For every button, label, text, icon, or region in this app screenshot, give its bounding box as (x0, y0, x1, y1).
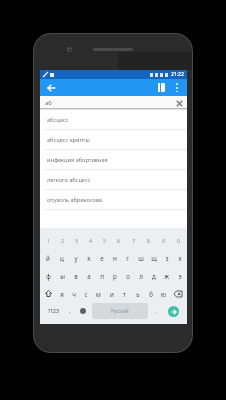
staticText: б (149, 290, 153, 298)
staticText: к (87, 254, 91, 262)
staticText: о (126, 272, 130, 280)
button[interactable]: р (108, 268, 121, 283)
staticText: п (100, 272, 104, 280)
button[interactable]: с (80, 286, 92, 301)
button[interactable]: 7 (126, 233, 141, 248)
button[interactable]: ц (55, 250, 69, 265)
staticText: 6 (117, 237, 120, 244)
staticText: э (178, 272, 182, 280)
button[interactable]: абсцесс крипты (40, 130, 187, 150)
button[interactable]: ы (55, 268, 69, 283)
button[interactable]: Backspace (170, 286, 186, 301)
button[interactable]: ч (68, 286, 80, 301)
button[interactable]: п (95, 268, 108, 283)
staticText: л (139, 272, 143, 280)
button[interactable]: Русский (92, 303, 148, 319)
staticText: ш (138, 254, 144, 262)
staticText: ы (60, 272, 65, 280)
button[interactable]: 2 (55, 233, 69, 248)
button[interactable]: 5 (97, 233, 111, 248)
staticText: 4 (89, 237, 92, 244)
staticText: ь (136, 290, 140, 298)
staticText: с (84, 290, 88, 298)
staticText: 1 (47, 237, 50, 244)
button[interactable]: б (144, 286, 157, 301)
staticText: 0 (177, 237, 180, 244)
staticText: щ (151, 254, 157, 262)
staticText: т (123, 290, 126, 298)
button[interactable]: а (82, 268, 95, 283)
button[interactable]: д (147, 268, 160, 283)
staticText: легкого абсцесс (47, 176, 91, 184)
button[interactable]: More options (171, 82, 182, 93)
staticText: 5 (103, 237, 106, 244)
staticText: х (178, 254, 182, 262)
staticText: м (96, 290, 101, 298)
staticText: г (126, 254, 129, 262)
staticText: 9 (162, 237, 165, 244)
button[interactable]: м (92, 286, 105, 301)
staticText: в (74, 272, 78, 280)
button[interactable]: ?123 (43, 303, 63, 319)
button[interactable]: з (160, 250, 173, 265)
staticText: з (165, 254, 169, 262)
button[interactable]: 1 (41, 233, 55, 248)
staticText: абсцесс крипты (47, 136, 90, 144)
staticText: д (152, 272, 156, 280)
staticText: 2 (61, 237, 64, 244)
staticText: 8 (147, 237, 150, 244)
button[interactable]: й (41, 250, 55, 265)
button[interactable]: аб (40, 96, 187, 109)
button[interactable]: и (105, 286, 118, 301)
button[interactable]: Clear (174, 98, 184, 108)
button[interactable]: легкого абсцесс (40, 170, 187, 190)
button[interactable]: ю (157, 286, 170, 301)
button[interactable]: г (121, 250, 134, 265)
button[interactable]: т (118, 286, 131, 301)
button[interactable]: к (82, 250, 95, 265)
button[interactable]: инфекция абортивная (40, 150, 187, 170)
button[interactable]: абсцесс (40, 110, 187, 130)
button[interactable]: щ (147, 250, 160, 265)
staticText: ю (161, 290, 166, 298)
staticText: ф (46, 272, 51, 280)
button[interactable]: 9 (156, 233, 171, 248)
button[interactable]: 4 (83, 233, 97, 248)
button[interactable]: л (134, 268, 147, 283)
staticText: ж (164, 272, 169, 280)
staticText: ?123 (48, 308, 59, 315)
button[interactable]: Shift (41, 286, 56, 301)
button[interactable]: х (173, 250, 186, 265)
button[interactable]: . (150, 303, 163, 319)
button[interactable]: ф (41, 268, 55, 283)
button[interactable]: н (108, 250, 121, 265)
staticText: опухоль абрикосова (47, 196, 103, 204)
button[interactable]: е (95, 250, 108, 265)
button[interactable]: 3 (69, 233, 83, 248)
button[interactable]: Search (163, 303, 184, 319)
staticText: н (113, 254, 117, 262)
staticText: р (113, 272, 117, 280)
button[interactable]: 6 (111, 233, 126, 248)
button[interactable]: ш (134, 250, 147, 265)
button[interactable]: у (69, 250, 82, 265)
button[interactable]: , (63, 303, 76, 319)
button[interactable]: опухоль абрикосова (40, 190, 187, 210)
button[interactable]: Change language (76, 303, 90, 319)
staticText: 7 (132, 237, 135, 244)
button[interactable]: 0 (171, 233, 186, 248)
button[interactable]: э (173, 268, 186, 283)
staticText: й (46, 254, 50, 262)
button[interactable]: ж (160, 268, 173, 283)
staticText: 3 (75, 237, 78, 244)
staticText: 21:22 (171, 71, 184, 78)
staticText: Русский (111, 308, 129, 314)
staticText: я (60, 290, 64, 298)
button[interactable]: 8 (141, 233, 156, 248)
button[interactable]: Dictionary (155, 81, 168, 94)
button[interactable]: о (121, 268, 134, 283)
button[interactable]: я (56, 286, 68, 301)
button[interactable]: ь (131, 286, 144, 301)
button[interactable]: в (69, 268, 82, 283)
button[interactable]: Back (45, 82, 57, 94)
